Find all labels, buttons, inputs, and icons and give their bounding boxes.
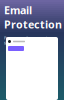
staticText: Prevent emails you receive	[4, 35, 51, 41]
staticText: from tracking you.	[4, 41, 36, 46]
staticText: Protection	[4, 17, 62, 31]
staticText: Email	[4, 3, 32, 17]
